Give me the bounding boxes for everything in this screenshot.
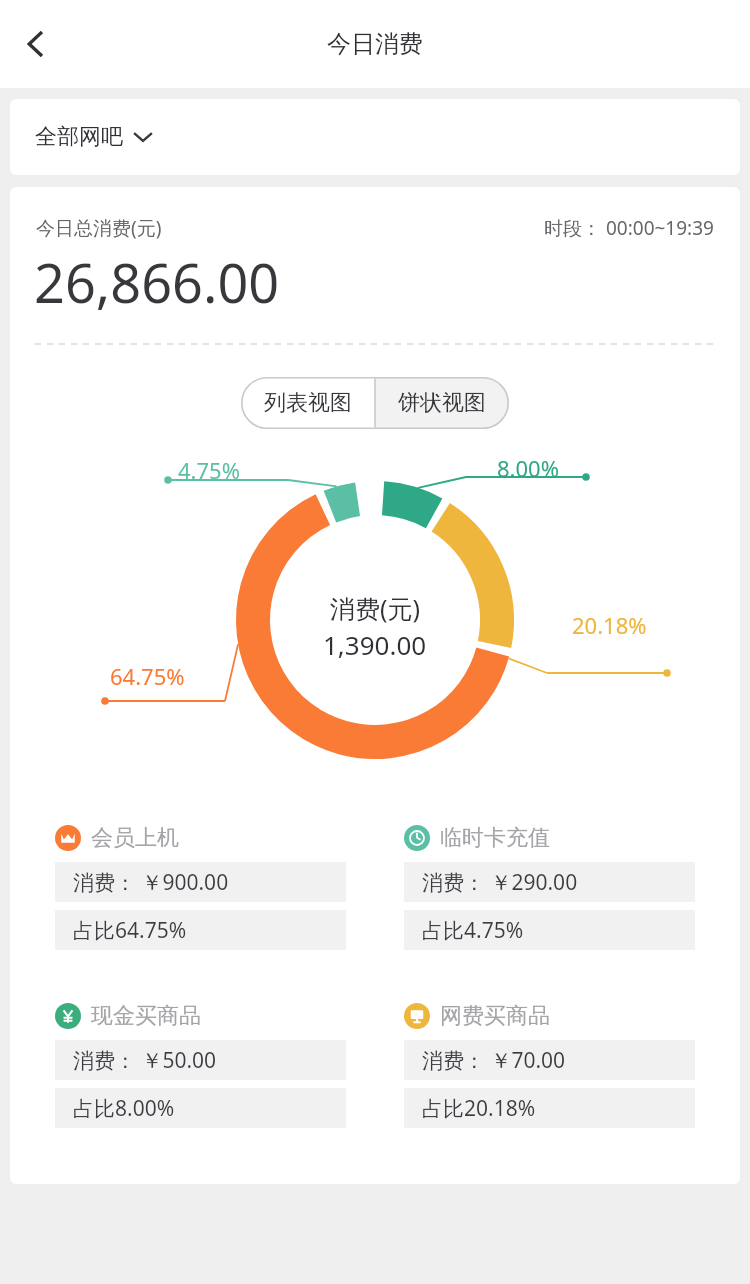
- staticText: 全部网吧: [35, 123, 123, 151]
- staticText: 消费： ￥900.00: [73, 868, 229, 897]
- staticText: 占比8.00%: [73, 1094, 175, 1123]
- button[interactable]: 饼状视图: [375, 377, 509, 429]
- staticText: 26,866.00: [34, 245, 280, 319]
- staticText: 会员上机: [91, 824, 179, 852]
- button[interactable]: 列表视图: [241, 377, 375, 429]
- staticText: 1,390.00: [323, 627, 427, 662]
- staticText: 时段： 00:00~19:39: [544, 215, 714, 241]
- staticText: 占比20.18%: [422, 1094, 536, 1123]
- staticText: 消费： ￥70.00: [422, 1046, 566, 1075]
- button[interactable]: 全部网吧: [10, 99, 740, 175]
- staticText: 列表视图: [264, 389, 352, 417]
- staticText: 64.75%: [110, 661, 185, 691]
- staticText: 20.18%: [572, 610, 647, 640]
- staticText: 8.00%: [497, 453, 559, 483]
- staticText: 饼状视图: [398, 389, 486, 417]
- staticText: 网费买商品: [440, 1002, 550, 1030]
- staticText: 消费： ￥50.00: [73, 1046, 217, 1075]
- staticText: 消费： ￥290.00: [422, 868, 578, 897]
- staticText: 占比64.75%: [73, 916, 187, 945]
- staticText: 现金买商品: [91, 1002, 201, 1030]
- button[interactable]: 现金买商品: [38, 986, 363, 1144]
- staticText: 临时卡充值: [440, 824, 550, 852]
- button[interactable]: 会员上机: [38, 808, 363, 966]
- staticText: 消费(元): [330, 591, 421, 625]
- staticText: 今日消费: [327, 29, 423, 59]
- staticText: 占比4.75%: [422, 916, 524, 945]
- button[interactable]: 临时卡充值: [387, 808, 712, 966]
- staticText: 今日总消费(元): [36, 215, 162, 241]
- staticText: 4.75%: [178, 455, 240, 485]
- button[interactable]: Back: [6, 15, 64, 73]
- button[interactable]: 网费买商品: [387, 986, 712, 1144]
